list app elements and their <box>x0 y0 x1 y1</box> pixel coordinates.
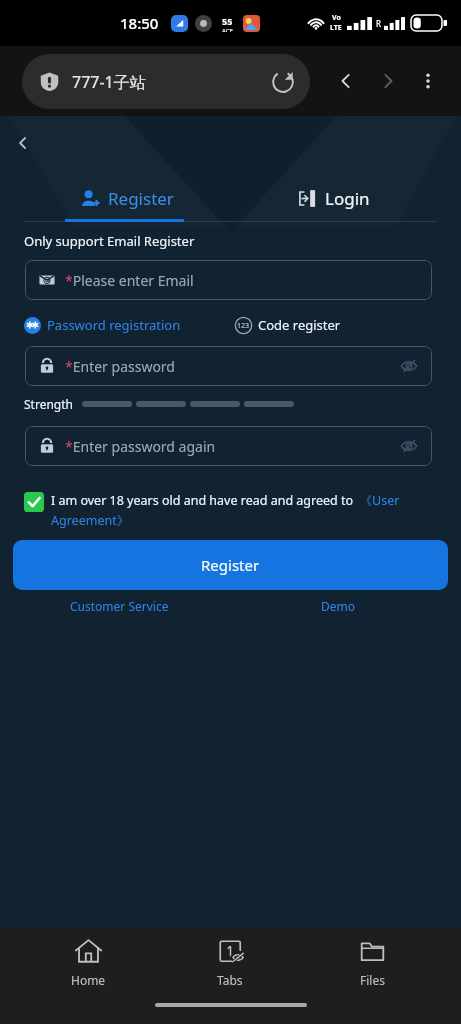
staticText: 777-1子站 <box>72 71 146 93</box>
button[interactable]: Forward <box>373 66 403 96</box>
button[interactable]: *Enter password again <box>25 426 432 466</box>
button[interactable]: Register <box>24 174 230 222</box>
button[interactable]: 123 <box>235 312 341 338</box>
staticText: Strength <box>24 396 73 412</box>
staticText: LTE <box>330 23 342 33</box>
staticText: Files <box>360 972 385 988</box>
staticText: R <box>376 18 381 29</box>
staticText: Password registration <box>47 316 181 334</box>
staticText: Code register <box>258 316 341 334</box>
button[interactable]: Customer Service <box>66 594 173 618</box>
button[interactable]: Login <box>230 174 437 222</box>
button[interactable]: *Enter password <box>25 346 432 386</box>
button[interactable]: Show password <box>398 435 420 457</box>
staticText: Vo <box>332 13 341 23</box>
staticText: I am over 18 years old and have read and… <box>51 492 439 529</box>
button[interactable]: Home <box>18 928 159 998</box>
staticText: ACE <box>222 27 233 32</box>
staticText: 123 <box>237 321 250 331</box>
button[interactable]: Back <box>8 128 38 158</box>
button[interactable]: 777-1子站 <box>22 54 310 109</box>
button[interactable]: Back <box>331 66 361 96</box>
staticText: Home <box>71 972 106 988</box>
staticText: *Please enter Email <box>65 271 194 290</box>
staticText: Register <box>108 187 174 210</box>
button[interactable]: I am over 18 years old and have read and… <box>24 492 439 529</box>
staticText: *Enter password <box>65 357 175 376</box>
button[interactable]: Password registration <box>24 312 181 338</box>
staticText: 18:50 <box>120 13 159 33</box>
staticText: *Enter password again <box>65 437 216 456</box>
button[interactable]: Demo <box>317 594 360 618</box>
button[interactable]: Tabs <box>159 928 301 998</box>
staticText: 55 <box>222 15 233 27</box>
staticText: Login <box>325 187 370 210</box>
button[interactable]: Reload page <box>270 69 296 95</box>
button[interactable]: Show password <box>398 355 420 377</box>
button[interactable]: *Please enter Email <box>25 260 432 300</box>
staticText: Only support Email Register <box>24 232 195 250</box>
button[interactable]: Files <box>301 928 443 998</box>
button[interactable]: More options <box>413 66 443 96</box>
button[interactable]: Register <box>13 540 448 590</box>
staticText: Tabs <box>217 972 243 988</box>
staticText: Register <box>201 555 260 575</box>
